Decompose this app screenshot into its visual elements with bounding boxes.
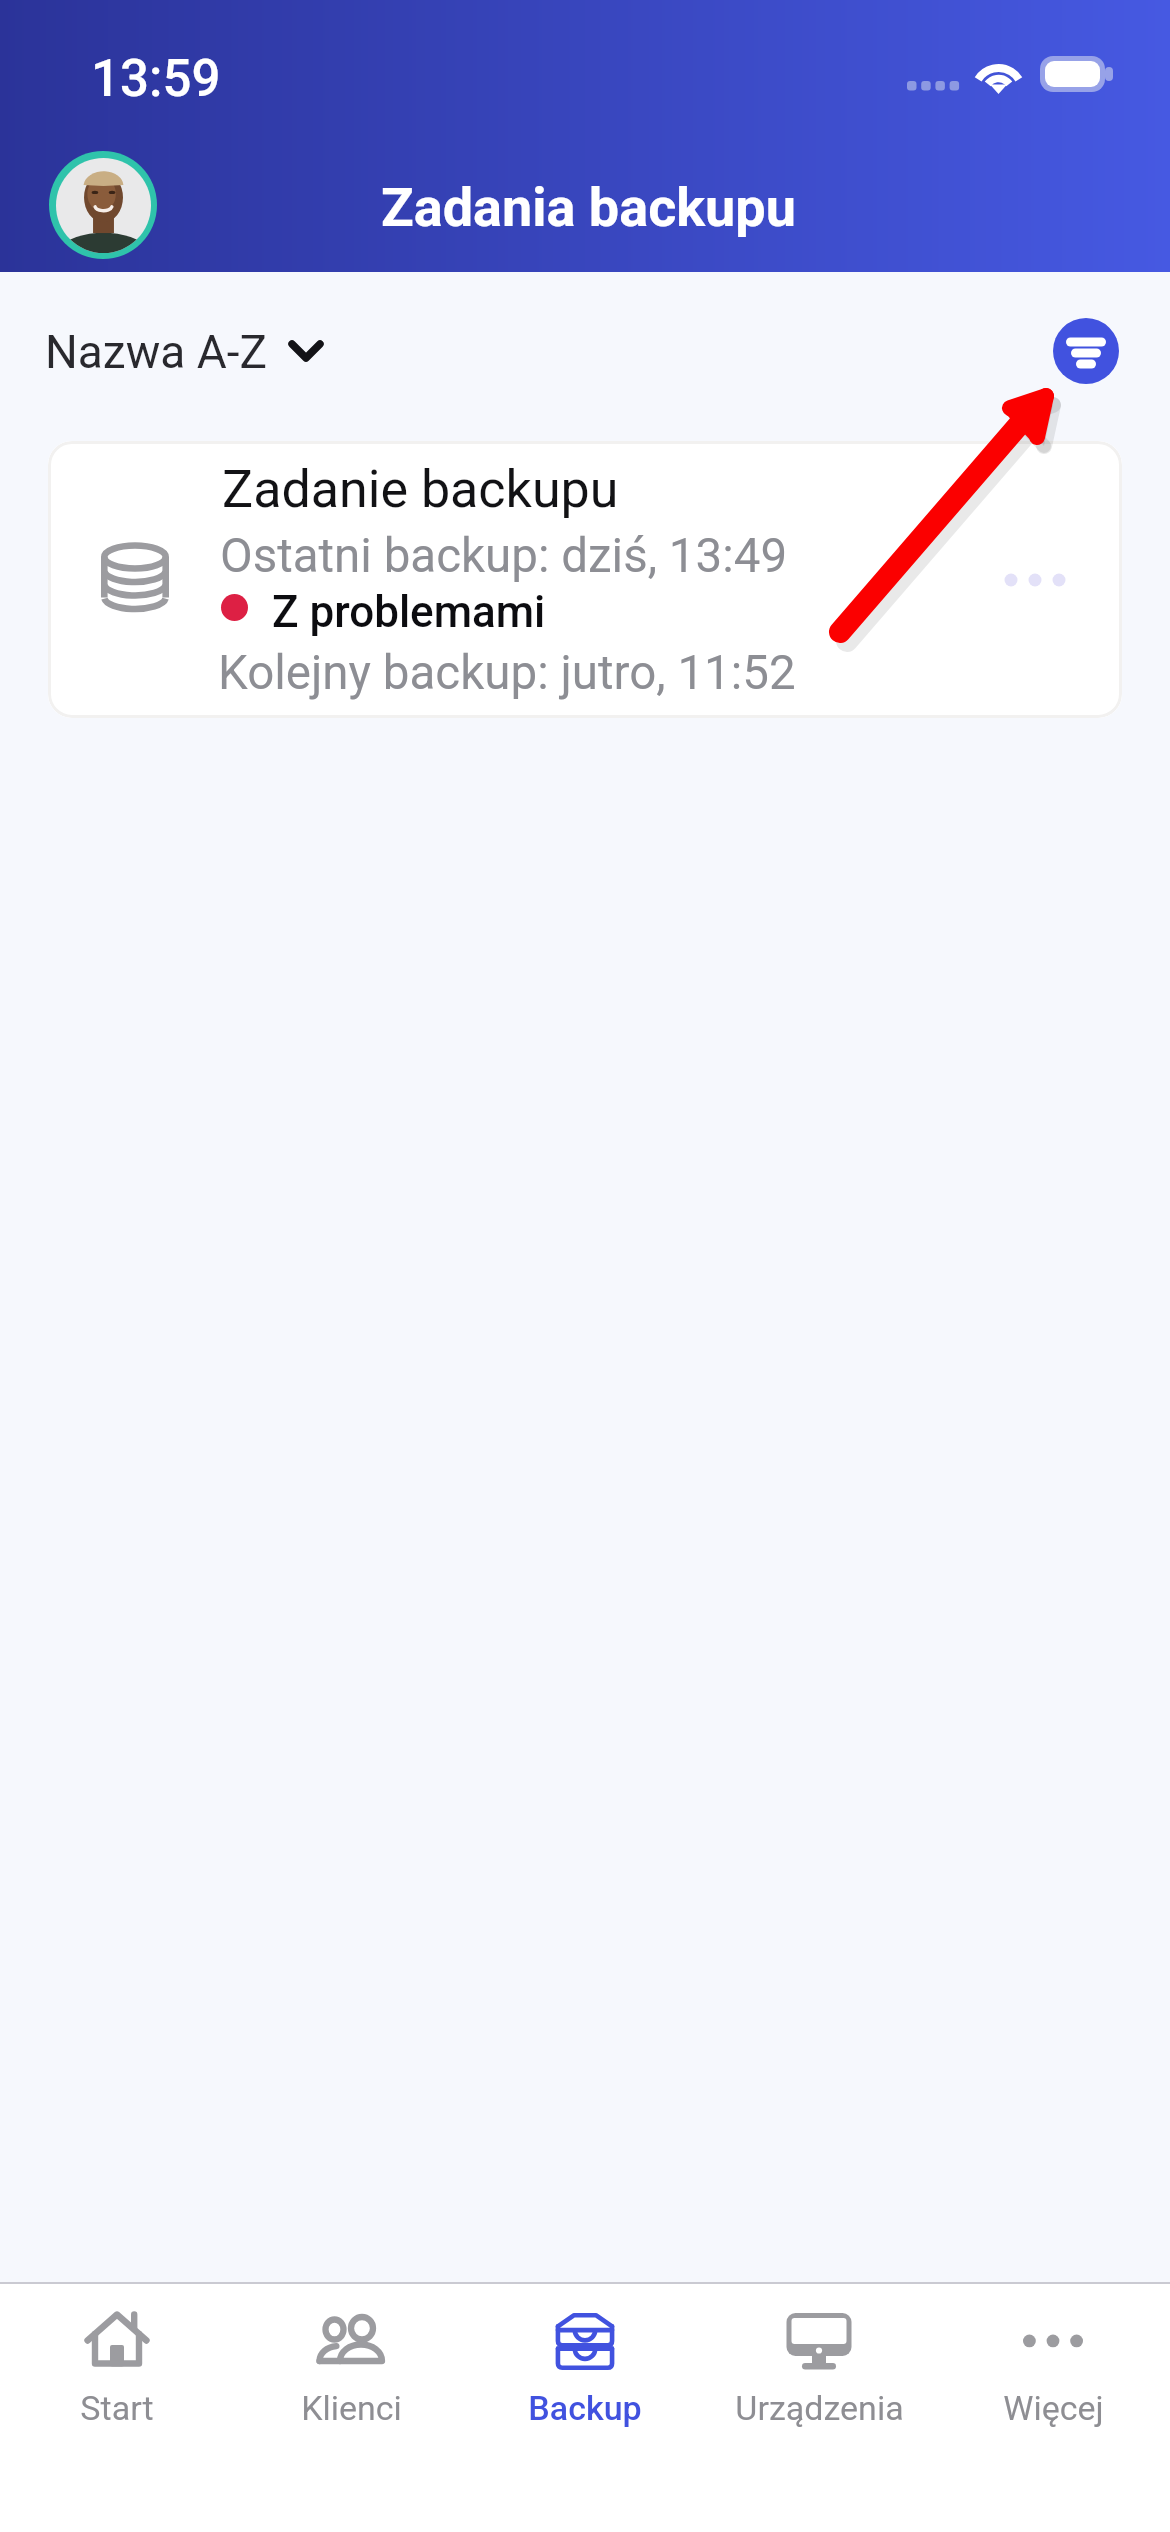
- staticText: 13:59: [91, 49, 221, 109]
- staticText: Z problemami: [272, 586, 546, 638]
- staticText: Zadanie backupu: [222, 459, 619, 520]
- staticText: Nazwa A-Z: [45, 325, 267, 379]
- staticText: Klienci: [301, 2388, 402, 2428]
- button[interactable]: Urządzenia: [702, 2284, 936, 2464]
- button[interactable]: Start: [0, 2284, 234, 2464]
- button[interactable]: Profil użytkownika: [49, 151, 157, 259]
- staticText: Start: [80, 2388, 154, 2428]
- staticText: Kolejny backup: jutro, 11:52: [218, 645, 796, 701]
- button[interactable]: Klienci: [234, 2284, 468, 2464]
- button[interactable]: Filtruj: [1053, 318, 1119, 384]
- button[interactable]: Zadanie backupu: [48, 441, 1122, 718]
- button[interactable]: Backup: [468, 2284, 702, 2464]
- staticText: Backup: [528, 2388, 642, 2428]
- button[interactable]: Nazwa A-Z: [45, 325, 324, 379]
- staticText: Zadania backupu: [381, 176, 796, 239]
- staticText: Więcej: [1003, 2388, 1104, 2428]
- staticText: Ostatni backup: dziś, 13:49: [220, 528, 788, 584]
- button[interactable]: Więcej opcji: [987, 550, 1077, 610]
- staticText: Urządzenia: [735, 2388, 904, 2428]
- button[interactable]: Więcej: [936, 2284, 1170, 2464]
